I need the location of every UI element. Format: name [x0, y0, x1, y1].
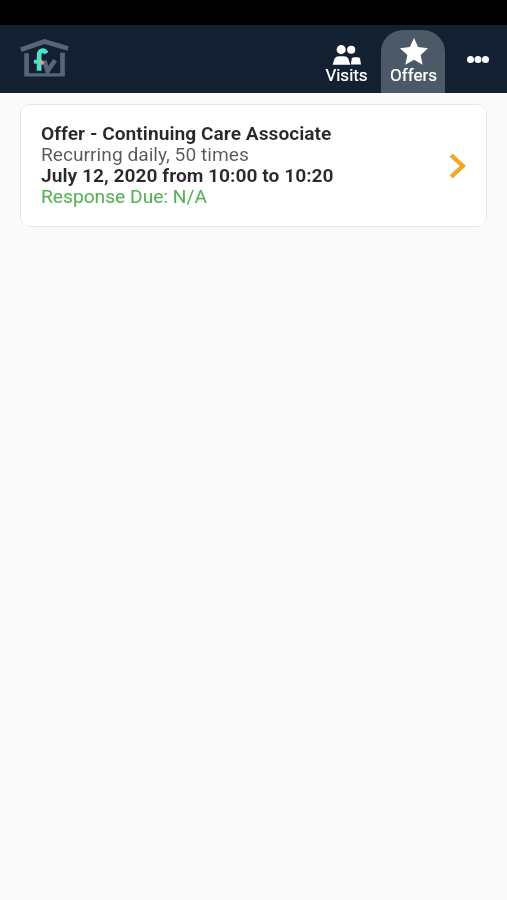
staticText: Response Due: N/A	[41, 185, 207, 208]
button[interactable]: Offer - Continuing Care Associate	[20, 104, 487, 227]
staticText: Visits	[325, 65, 368, 85]
staticText: Recurring daily, 50 times	[41, 143, 249, 166]
button[interactable]: Visits	[314, 30, 378, 93]
button[interactable]: Offers	[381, 30, 445, 93]
staticText: July 12, 2020 from 10:00 to 10:20	[41, 164, 334, 187]
staticText: Offer - Continuing Care Associate	[41, 122, 332, 145]
button[interactable]: Home	[18, 38, 70, 80]
staticText: Offers	[390, 65, 437, 85]
button[interactable]: More options	[445, 25, 507, 93]
